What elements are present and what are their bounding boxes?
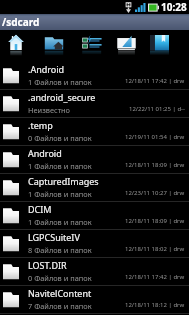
staticText: 1 Файлов и папок [28,189,108,199]
button[interactable]: DCIM [0,202,189,230]
staticText: LOST.DIR [28,259,128,271]
button[interactable]: .Android [0,62,189,90]
staticText: 12/19/11 01:54 | drw [125,133,185,141]
button[interactable]: NavitelContent [0,286,189,314]
staticText: 12/18/11 18:12 | drw [125,301,185,309]
staticText: 1 Файлов и папок [28,217,108,227]
staticText: 12/23/11 10:27 | drw [125,189,185,197]
staticText: 12/18/11 17:42 | drw [125,77,185,85]
staticText: DCIM [28,203,128,215]
button[interactable]: Android [0,146,189,174]
staticText: .android_secure [28,91,128,103]
button[interactable]: .temp [0,118,189,146]
staticText: /sdcard [2,15,40,29]
staticText: 0 Файлов и папок [28,273,108,283]
staticText: LGPCSuiteIV [28,231,128,243]
staticText: 8 Файлов и папок [28,245,108,255]
staticText: Android [28,147,128,159]
button[interactable]: Bookmarks [150,34,169,57]
staticText: CapturedImages [28,175,128,187]
staticText: 10:28 [161,0,187,14]
button[interactable]: Home [8,34,24,57]
button[interactable]: List view [81,34,102,57]
button[interactable]: LGPCSuiteIV [0,230,189,258]
staticText: 1 Файлов и папок [28,77,108,87]
staticText: 12/18/11 18:09 | drw [125,217,185,225]
staticText: .temp [28,119,128,131]
button[interactable]: LOST.DIR [0,258,189,286]
staticText: 12/18/11 18:02 | drw [125,245,185,253]
staticText: NavitelContent [28,287,128,299]
button[interactable]: New document [116,34,137,57]
button[interactable]: Home folder [44,34,64,57]
staticText: .Android [28,63,128,75]
staticText: 12/18/11 18:09 | drw [125,161,185,169]
staticText: 12/22/11 01:25 | d-- [129,105,185,113]
button[interactable]: .android_secure [0,90,189,118]
staticText: 7 Файлов и папок [28,301,108,311]
staticText: 0 Файлов и папок [28,133,108,143]
staticText: Неизвестно [28,105,108,115]
staticText: 12/18/11 17:42 | drw [125,273,185,281]
button[interactable]: CapturedImages [0,174,189,202]
staticText: 1 Файлов и папок [28,161,108,171]
